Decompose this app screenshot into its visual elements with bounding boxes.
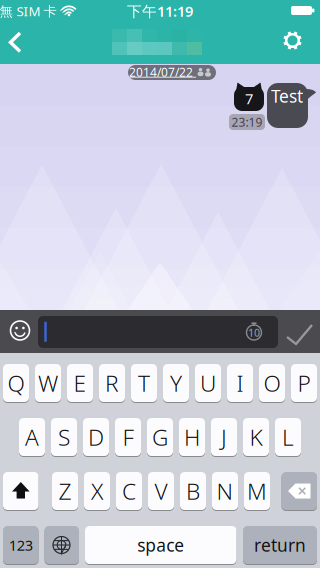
staticText: Y (170, 368, 182, 398)
staticText: E (73, 368, 86, 398)
staticText: T (138, 368, 150, 398)
staticText: S (58, 422, 70, 452)
staticText: O (263, 368, 280, 398)
staticText: H (184, 422, 200, 452)
staticText: 23:19 (231, 114, 262, 130)
staticText: N (216, 476, 233, 506)
staticText: G (152, 422, 168, 452)
staticText: Q (7, 368, 24, 398)
staticText: return (254, 533, 306, 556)
staticText: Z (58, 476, 71, 506)
staticText: L (282, 422, 294, 452)
staticText: F (122, 422, 133, 452)
staticText: M (247, 476, 267, 506)
staticText: D (88, 422, 104, 452)
staticText: X (91, 476, 103, 506)
staticText: P (297, 368, 310, 398)
staticText: U (200, 368, 216, 398)
staticText: 下午11:19 (127, 1, 193, 21)
staticText: A (25, 422, 39, 452)
staticText: V (154, 476, 167, 506)
staticText: K (249, 422, 262, 452)
staticText: 無 SIM 卡 (0, 2, 56, 20)
staticText: 10 (248, 325, 260, 340)
staticText: 123 (9, 535, 33, 555)
staticText: I (236, 368, 243, 398)
staticText: space (137, 533, 184, 556)
staticText: C (122, 476, 136, 506)
staticText: R (105, 368, 119, 398)
staticText: Test (271, 84, 303, 107)
staticText: W (38, 368, 58, 398)
staticText: J (221, 422, 227, 452)
staticText: B (186, 476, 200, 506)
staticText: 7 (245, 89, 253, 108)
staticText: 2014/07/22 (129, 64, 193, 80)
